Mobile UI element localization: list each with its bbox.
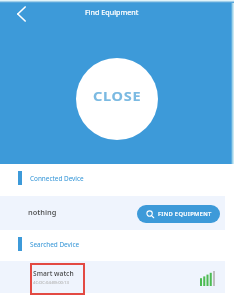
staticText: 4C:DC:04:B9:00:13 [33,280,69,286]
staticText: Searched Device [30,240,80,249]
button[interactable]: Back [8,1,34,27]
staticText: CLOSE [93,89,142,105]
other: Signal strength [200,271,215,286]
button[interactable]: CLOSE [76,58,158,140]
button[interactable]: FIND EQUIPMENT [137,205,220,223]
staticText: nothing [28,207,57,217]
staticText: FIND EQUIPMENT [158,210,212,218]
button[interactable]: Smart watch [0,261,234,293]
staticText: Smart watch [33,269,74,278]
button[interactable]: nothing [0,196,225,230]
staticText: Connected Device [30,174,84,183]
staticText: Find Equipment [85,7,139,17]
